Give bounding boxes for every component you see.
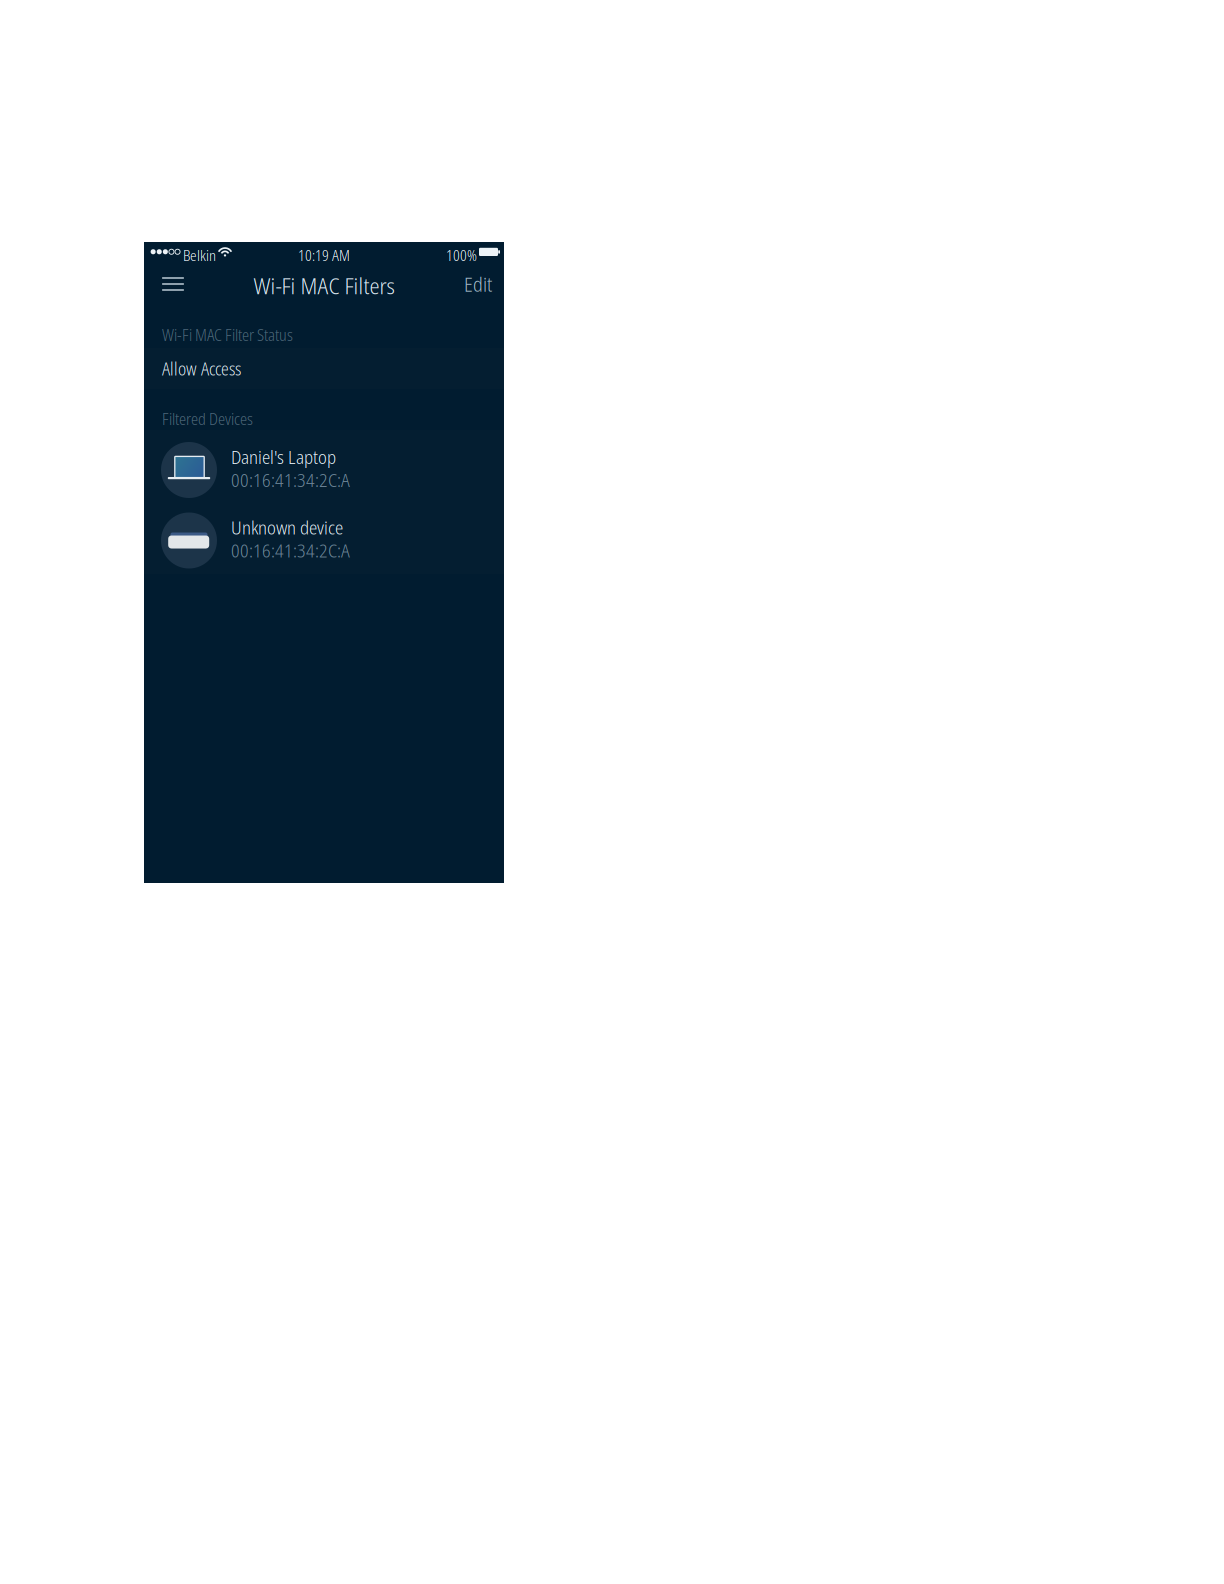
button[interactable]: Menu xyxy=(151,262,195,306)
staticText: 100% xyxy=(446,245,477,265)
staticText: Unknown device xyxy=(231,514,343,540)
staticText: 00:16:41:34:2C:A xyxy=(231,467,350,492)
button[interactable]: Allow Access xyxy=(144,348,504,389)
button[interactable]: Unknown device xyxy=(144,500,504,571)
staticText: Edit xyxy=(464,270,492,298)
staticText: Filtered Devices xyxy=(162,408,253,430)
staticText: Wi-Fi MAC Filters xyxy=(253,270,394,301)
staticText: 00:16:41:34:2C:A xyxy=(231,537,350,563)
staticText: Allow Access xyxy=(162,357,241,381)
button[interactable]: Edit xyxy=(428,262,492,306)
button[interactable]: Daniel's Laptop xyxy=(144,430,504,500)
staticText: Daniel's Laptop xyxy=(231,444,336,469)
staticText: Wi-Fi MAC Filter Status xyxy=(162,324,293,346)
staticText: 10:19 AM xyxy=(298,245,350,265)
staticText: Belkin xyxy=(183,245,216,265)
